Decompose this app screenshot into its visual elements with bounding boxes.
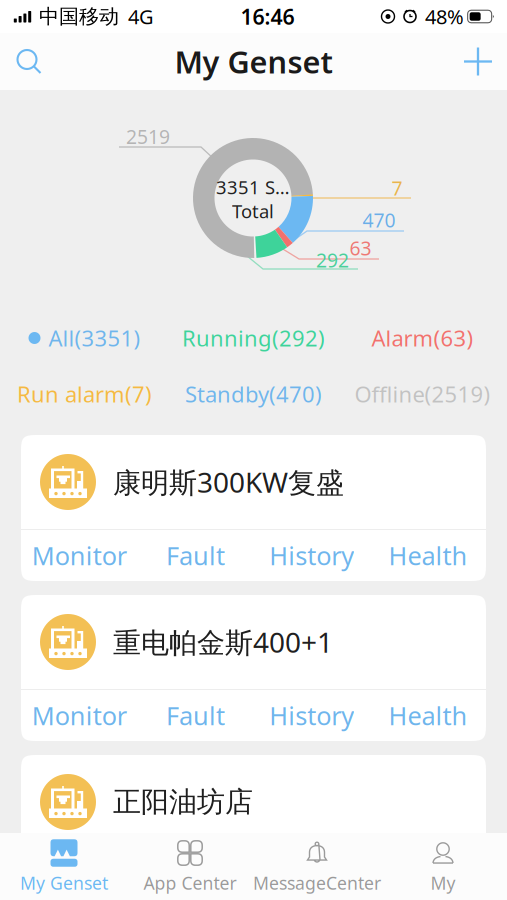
button[interactable]: History xyxy=(253,690,370,741)
staticText: 中国移动 xyxy=(39,4,119,29)
staticText: 康明斯300KW复盛 xyxy=(113,463,344,501)
button[interactable]: Add xyxy=(449,33,507,90)
staticText: Alarm(63) xyxy=(371,323,473,353)
button[interactable]: History xyxy=(253,850,370,900)
staticText: 正阳油坊店 xyxy=(113,785,253,819)
button[interactable]: Monitor xyxy=(21,530,137,581)
staticText: Running(292) xyxy=(182,323,325,353)
staticText: 7 xyxy=(391,175,402,201)
button[interactable]: MessageCenter xyxy=(232,835,402,898)
staticText: Offline(2519) xyxy=(354,379,490,409)
button[interactable]: 康明斯300KW复盛 xyxy=(21,435,486,529)
staticText: Health xyxy=(388,539,467,572)
button[interactable]: 重电帕金斯400+1 xyxy=(21,595,486,689)
button[interactable]: 正阳油坊店 xyxy=(21,755,486,849)
staticText: My Genset xyxy=(174,41,332,82)
staticText: Fault xyxy=(166,699,225,732)
button[interactable]: Fault xyxy=(137,530,253,581)
staticText: App Center xyxy=(143,871,236,895)
staticText: Fault xyxy=(166,859,225,892)
button[interactable]: My xyxy=(358,835,507,898)
button[interactable]: Monitor xyxy=(21,850,137,900)
button[interactable]: Health xyxy=(370,850,486,900)
staticText: History xyxy=(269,699,354,732)
staticText: My Genset xyxy=(20,871,108,895)
staticText: My xyxy=(430,871,455,895)
button[interactable]: Fault xyxy=(137,850,253,900)
staticText: 16:46 xyxy=(240,2,294,31)
button[interactable]: History xyxy=(253,530,370,581)
button[interactable]: Standby(470) xyxy=(169,372,338,416)
staticText: Monitor xyxy=(32,699,127,732)
staticText: 重电帕金斯400+1 xyxy=(113,623,333,661)
button[interactable]: Running(292) xyxy=(169,316,338,360)
staticText: 470 xyxy=(362,207,395,233)
staticText: All(3351) xyxy=(48,323,140,353)
staticText: 292 xyxy=(316,247,349,273)
staticText: 48% xyxy=(425,3,464,30)
button[interactable]: Search xyxy=(0,33,58,90)
staticText: History xyxy=(269,539,354,572)
button[interactable]: App Center xyxy=(105,835,275,898)
staticText: Run alarm(7) xyxy=(17,379,152,409)
button[interactable]: Health xyxy=(370,690,486,741)
staticText: History xyxy=(269,859,354,892)
staticText: 63 xyxy=(349,235,371,261)
button[interactable]: Health xyxy=(370,530,486,581)
button[interactable]: Offline(2519) xyxy=(338,372,507,416)
button[interactable]: Alarm(63) xyxy=(338,316,507,360)
button[interactable]: Run alarm(7) xyxy=(0,372,169,416)
button[interactable]: All(3351) xyxy=(0,316,169,360)
staticText: 2519 xyxy=(126,123,170,150)
button[interactable]: Monitor xyxy=(21,690,137,741)
staticText: 4G xyxy=(128,3,154,30)
button[interactable]: Fault xyxy=(137,690,253,741)
staticText: Standby(470) xyxy=(185,379,322,409)
staticText: Health xyxy=(388,699,467,732)
staticText: Monitor xyxy=(32,539,127,572)
staticText: 3351 S… xyxy=(216,174,290,200)
staticText: Fault xyxy=(166,539,225,572)
staticText: Total xyxy=(232,198,274,224)
button[interactable]: My Genset xyxy=(0,835,149,898)
staticText: Monitor xyxy=(32,859,127,892)
staticText: MessageCenter xyxy=(253,871,381,895)
staticText: Health xyxy=(388,859,467,892)
